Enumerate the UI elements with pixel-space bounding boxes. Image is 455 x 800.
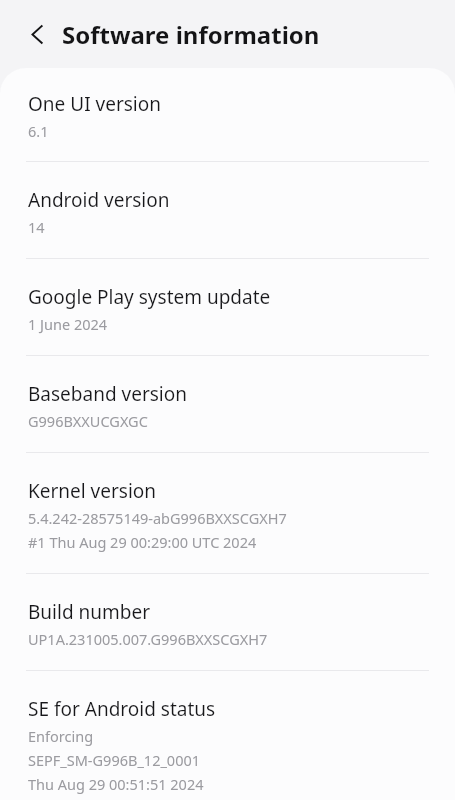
staticText: Software information bbox=[62, 18, 320, 51]
staticText: UP1A.231005.007.G996BXXSCGXH7 bbox=[28, 629, 268, 649]
staticText: Thu Aug 29 00:51:51 2024 bbox=[28, 774, 204, 794]
button[interactable]: SE for Android status bbox=[0, 671, 455, 800]
staticText: Google Play system update bbox=[28, 284, 271, 310]
staticText: 5.4.242-28575149-abG996BXXSCGXH7 bbox=[28, 508, 287, 528]
button[interactable]: Back bbox=[14, 11, 60, 57]
staticText: Build number bbox=[28, 599, 151, 625]
button[interactable]: Baseband version bbox=[0, 356, 455, 452]
staticText: SEPF_SM-G996B_12_0001 bbox=[28, 750, 201, 770]
staticText: One UI version bbox=[28, 91, 161, 117]
staticText: Enforcing bbox=[28, 726, 94, 746]
staticText: 14 bbox=[28, 217, 45, 237]
staticText: 6.1 bbox=[28, 121, 49, 141]
button[interactable]: Build number bbox=[0, 574, 455, 670]
staticText: Android version bbox=[28, 187, 170, 213]
button[interactable]: Google Play system update bbox=[0, 259, 455, 355]
staticText: SE for Android status bbox=[28, 696, 216, 722]
button[interactable]: One UI version bbox=[0, 68, 455, 161]
button[interactable]: Android version bbox=[0, 162, 455, 258]
staticText: #1 Thu Aug 29 00:29:00 UTC 2024 bbox=[28, 532, 257, 552]
staticText: Baseband version bbox=[28, 381, 187, 407]
staticText: 1 June 2024 bbox=[28, 314, 108, 334]
button[interactable]: Kernel version bbox=[0, 453, 455, 573]
staticText: G996BXXUCGXGC bbox=[28, 411, 148, 431]
staticText: Kernel version bbox=[28, 478, 157, 504]
